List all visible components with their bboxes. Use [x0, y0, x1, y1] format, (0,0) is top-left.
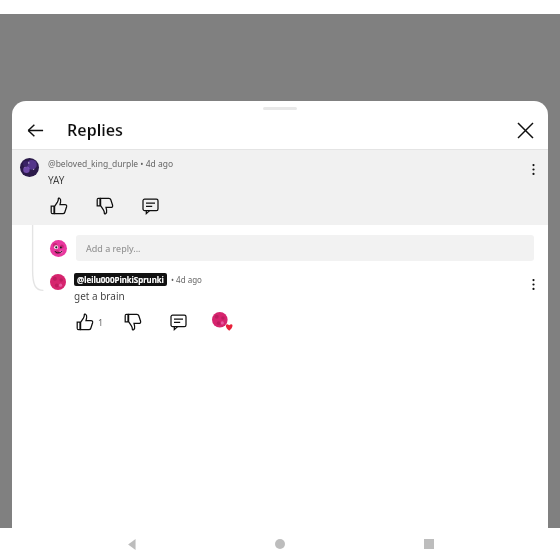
staticText: @beloved_king_durple • 4d ago: [48, 158, 174, 170]
button[interactable]: @beloved_king_durple • 4d ago: [12, 150, 548, 225]
staticText: 20: [545, 174, 558, 189]
button[interactable]: @leilu000PinkiSprunki: [12, 273, 548, 333]
staticText: • 4d ago: [171, 274, 202, 285]
staticText: Add a reply...: [86, 242, 141, 254]
button[interactable]: Like: [48, 195, 70, 217]
button[interactable]: Like: [74, 311, 106, 333]
button[interactable]: Back: [16, 111, 54, 149]
button[interactable]: Reply: [140, 195, 162, 217]
button[interactable]: More options: [522, 158, 544, 180]
staticText: YAY: [48, 173, 65, 187]
button[interactable]: Reply: [168, 311, 190, 333]
staticText: get a brain: [74, 289, 125, 303]
staticText: ma: [2, 330, 22, 348]
button[interactable]: Add a reply...: [50, 235, 534, 261]
button[interactable]: Home: [263, 528, 297, 560]
button[interactable]: Recent apps: [412, 528, 446, 560]
button[interactable]: Creator heart: [212, 312, 232, 332]
staticText: @leilu000PinkiSprunki: [77, 274, 164, 285]
button[interactable]: Back: [115, 528, 149, 560]
button[interactable]: Dislike: [122, 311, 144, 333]
button[interactable]: Close: [506, 111, 544, 149]
staticText: Replies: [67, 119, 123, 141]
button[interactable]: Dislike: [94, 195, 116, 217]
staticText: 1: [98, 316, 104, 328]
staticText: ho: [2, 298, 18, 316]
button[interactable]: More options: [522, 273, 544, 295]
staticText: oa: [2, 172, 20, 192]
